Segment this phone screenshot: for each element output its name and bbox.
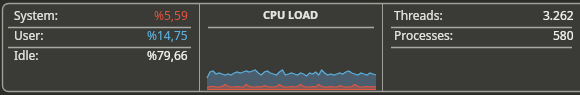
button[interactable]: Idle: (0, 48, 199, 68)
staticText: 3.262 (543, 7, 574, 23)
staticText: Processes: (394, 27, 453, 43)
staticText: CPU LOAD (263, 7, 319, 22)
staticText: Idle: (14, 47, 39, 63)
staticText: Threads: (394, 7, 443, 23)
button[interactable]: Threads: (383, 8, 580, 28)
staticText: %79,66 (147, 47, 188, 63)
button[interactable]: CPU LOAD (200, 8, 382, 28)
staticText: System: (14, 7, 58, 23)
button[interactable]: Processes: (383, 28, 580, 48)
staticText: %14,75 (147, 27, 188, 43)
staticText: User: (14, 27, 44, 43)
staticText: %5,59 (154, 7, 188, 23)
button[interactable]: System: (0, 8, 199, 28)
staticText: 580 (553, 27, 574, 43)
button[interactable]: User: (0, 28, 199, 48)
